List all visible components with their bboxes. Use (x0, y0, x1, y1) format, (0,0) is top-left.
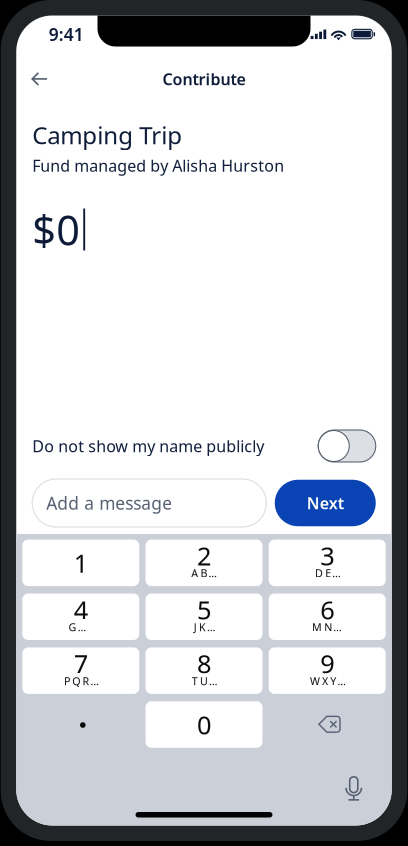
button[interactable]: 9 (269, 647, 386, 694)
button[interactable]: Back (18, 60, 60, 98)
button[interactable]: Decimal point (22, 701, 139, 748)
staticText: WXYZ (310, 674, 344, 688)
staticText: 0 (197, 708, 211, 741)
staticText: 6 (320, 593, 334, 626)
staticText: 9 (320, 647, 334, 680)
button[interactable]: Dictate (337, 774, 371, 804)
button[interactable]: Next (275, 480, 376, 526)
staticText: JKL (194, 620, 214, 634)
staticText: PQRS (64, 674, 98, 688)
staticText: $0 (32, 202, 80, 257)
staticText: Camping Trip (32, 119, 182, 151)
staticText: 2 (197, 539, 211, 572)
button[interactable]: Add a message (32, 479, 266, 527)
staticText: TUV (192, 674, 216, 688)
staticText: Next (307, 492, 344, 514)
button[interactable]: 6 (269, 593, 386, 640)
staticText: GHI (69, 620, 93, 634)
button[interactable]: 4 (22, 593, 139, 640)
staticText: 7 (74, 647, 88, 680)
staticText: Fund managed by Alisha Hurston (32, 155, 284, 176)
button[interactable]: Delete (269, 701, 386, 748)
staticText: 1 (74, 546, 88, 580)
button[interactable]: 1 (22, 540, 139, 586)
staticText: 8 (197, 647, 211, 680)
staticText: 5 (197, 593, 211, 626)
staticText: 3 (320, 539, 334, 572)
staticText: 4 (74, 593, 88, 626)
staticText: ABC (191, 566, 217, 580)
staticText: Add a message (46, 491, 172, 514)
staticText: MNO (312, 620, 342, 634)
button[interactable]: 3 (269, 540, 386, 586)
button[interactable]: 5 (145, 593, 262, 640)
staticText: DEF (315, 566, 339, 580)
button[interactable]: 8 (145, 647, 262, 694)
button[interactable]: 7 (22, 647, 139, 694)
button[interactable]: 0 (145, 701, 262, 748)
button[interactable]: 2 (145, 540, 262, 586)
button[interactable]: Do not show my name publicly (318, 430, 376, 462)
staticText: Contribute (162, 68, 245, 90)
staticText: 9:41 (49, 23, 84, 46)
staticText: Do not show my name publicly (32, 435, 264, 457)
